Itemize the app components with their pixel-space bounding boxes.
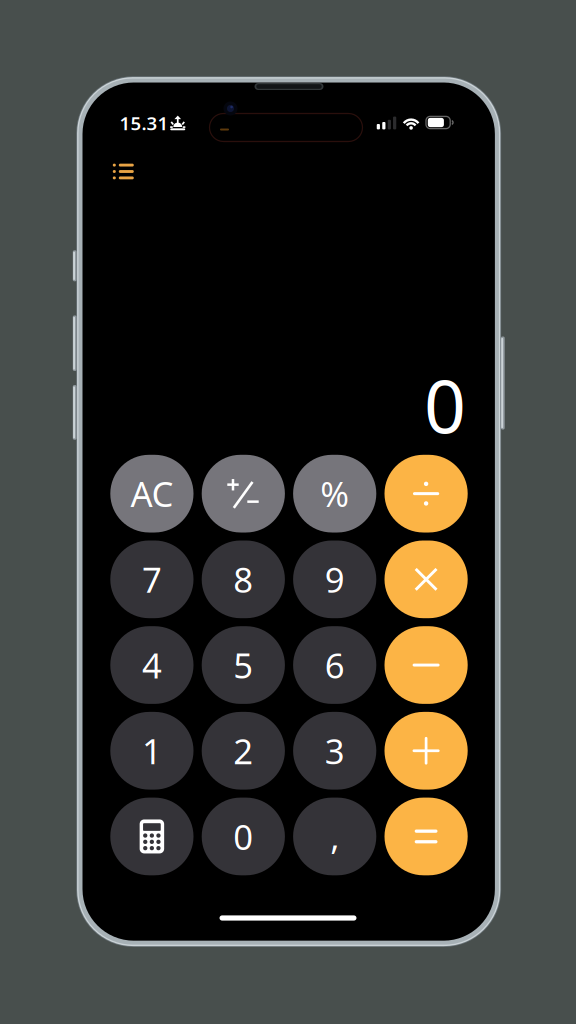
button[interactable]: 5: [202, 626, 285, 704]
staticText: %: [320, 471, 349, 517]
staticText: 9: [325, 556, 345, 602]
button[interactable]: 8: [202, 540, 285, 618]
staticText: 6: [325, 642, 345, 688]
button[interactable]: 2: [202, 712, 285, 790]
button[interactable]: Add: [384, 712, 468, 790]
staticText: 1: [142, 728, 162, 774]
button[interactable]: Calculator modes: [110, 798, 193, 875]
staticText: 7: [142, 556, 162, 602]
button[interactable]: Menu: [101, 150, 145, 194]
button[interactable]: 4: [110, 626, 193, 704]
button[interactable]: Divide: [384, 455, 468, 532]
button[interactable]: Decimal: [293, 798, 376, 875]
staticText: ,: [330, 813, 339, 859]
staticText: 8: [233, 556, 253, 602]
staticText: 5: [233, 642, 253, 688]
button[interactable]: 7: [110, 540, 193, 618]
button[interactable]: Plus minus: [202, 455, 285, 532]
staticText: 2: [233, 728, 253, 774]
button[interactable]: Subtract: [384, 626, 468, 704]
button[interactable]: Equals: [384, 798, 468, 875]
staticText: 15.31: [119, 111, 168, 135]
staticText: 3: [325, 728, 345, 774]
staticText: 0: [424, 356, 466, 454]
staticText: 4: [142, 642, 162, 688]
button[interactable]: All clear: [110, 455, 193, 532]
staticText: AC: [130, 471, 173, 517]
button[interactable]: Multiply: [384, 540, 468, 618]
button[interactable]: 1: [110, 712, 193, 790]
button[interactable]: 6: [293, 626, 376, 704]
staticText: 0: [233, 813, 253, 859]
button[interactable]: 0: [202, 798, 285, 875]
button[interactable]: 9: [293, 540, 376, 618]
button[interactable]: 3: [293, 712, 376, 790]
button[interactable]: Percent: [293, 455, 376, 532]
